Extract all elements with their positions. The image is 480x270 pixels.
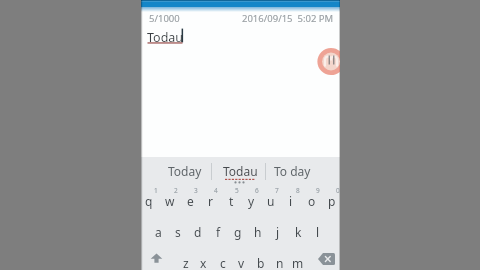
- button[interactable]: To day: [266, 157, 318, 185]
- staticText: c: [220, 255, 226, 270]
- button[interactable]: n: [270, 247, 289, 270]
- staticText: 3: [194, 186, 198, 195]
- button[interactable]: y: [241, 185, 261, 216]
- button[interactable]: i: [281, 185, 301, 216]
- staticText: r: [208, 193, 213, 209]
- staticText: q: [145, 193, 153, 209]
- staticText: s: [175, 224, 181, 240]
- button[interactable]: s: [168, 216, 188, 247]
- button[interactable]: z: [176, 247, 195, 270]
- button[interactable]: h: [248, 216, 268, 247]
- staticText: x: [200, 255, 207, 270]
- staticText: p: [328, 193, 336, 209]
- staticText: 7: [275, 186, 279, 195]
- button[interactable]: Todau: [214, 157, 266, 185]
- staticText: j: [276, 224, 280, 240]
- staticText: f: [216, 224, 221, 240]
- button[interactable]: e: [180, 185, 200, 216]
- staticText: d: [194, 224, 202, 240]
- staticText: k: [295, 224, 302, 240]
- staticText: Today: [168, 163, 202, 179]
- staticText: t: [229, 193, 234, 209]
- staticText: o: [308, 193, 316, 209]
- staticText: v: [238, 255, 245, 270]
- staticText: i: [289, 193, 293, 209]
- button[interactable]: b: [251, 247, 270, 270]
- button[interactable]: j: [268, 216, 288, 247]
- button[interactable]: l: [308, 216, 328, 247]
- button[interactable]: w: [160, 185, 180, 216]
- staticText: n: [276, 255, 284, 270]
- staticText: h: [254, 224, 262, 240]
- staticText: w: [165, 193, 175, 209]
- staticText: 9: [316, 186, 320, 195]
- staticText: y: [248, 193, 255, 209]
- staticText: m: [292, 255, 304, 270]
- button[interactable]: g: [228, 216, 248, 247]
- button[interactable]: v: [232, 247, 251, 270]
- staticText: g: [234, 224, 242, 240]
- button[interactable]: u: [261, 185, 281, 216]
- button[interactable]: p: [322, 185, 342, 216]
- button[interactable]: [142, 248, 170, 270]
- staticText: To day: [274, 163, 311, 179]
- staticText: 0: [336, 186, 340, 195]
- staticText: 1: [154, 186, 158, 195]
- button[interactable]: k: [288, 216, 308, 247]
- staticText: u: [267, 193, 275, 209]
- button[interactable]: q: [139, 185, 159, 216]
- button[interactable]: t: [221, 185, 241, 216]
- staticText: Todau: [223, 163, 258, 179]
- button[interactable]: x: [194, 247, 213, 270]
- staticText: z: [183, 255, 189, 270]
- staticText: 8: [296, 186, 300, 195]
- button[interactable]: Today: [159, 157, 211, 185]
- staticText: l: [316, 224, 320, 240]
- staticText: 2016/09/15 5:02 PM: [242, 12, 334, 25]
- staticText: 5: [235, 186, 239, 195]
- button[interactable]: o: [302, 185, 322, 216]
- button[interactable]: r: [200, 185, 220, 216]
- staticText: 5/1000: [149, 12, 180, 25]
- button[interactable]: [312, 248, 340, 270]
- button[interactable]: c: [213, 247, 232, 270]
- staticText: e: [187, 193, 194, 209]
- staticText: b: [257, 255, 265, 270]
- staticText: 6: [255, 186, 259, 195]
- button[interactable]: a: [148, 216, 168, 247]
- staticText: 4: [214, 186, 218, 195]
- staticText: a: [155, 224, 162, 240]
- staticText: 2: [174, 186, 178, 195]
- staticText: Todau: [147, 29, 184, 46]
- button[interactable]: d: [188, 216, 208, 247]
- button[interactable]: m: [288, 247, 307, 270]
- button[interactable]: f: [208, 216, 228, 247]
